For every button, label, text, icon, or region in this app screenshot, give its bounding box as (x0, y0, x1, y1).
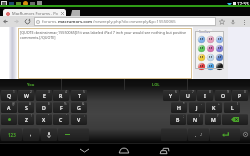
staticText: M (211, 116, 216, 123)
staticText: B (176, 116, 180, 123)
staticText: ; (183, 114, 184, 118)
staticText: [QUOTE=brainsinmac;15550065]If it was la… (20, 30, 187, 40)
staticText: 7 (192, 90, 194, 94)
button[interactable] (216, 36, 223, 43)
button[interactable]: Enter (210, 128, 240, 141)
button[interactable]: Recent apps (152, 143, 176, 156)
button[interactable] (198, 45, 205, 52)
button[interactable]: Y (163, 90, 179, 101)
staticText: $ (48, 102, 50, 106)
button[interactable]: D (36, 102, 52, 113)
button[interactable]: Home (112, 143, 136, 156)
button[interactable] (188, 79, 250, 90)
staticText: Z (25, 116, 28, 123)
button[interactable]: Comma (23, 128, 39, 141)
button[interactable] (198, 63, 205, 70)
button[interactable]: Close tab (60, 11, 64, 15)
button[interactable]: Voice input (41, 128, 57, 141)
button[interactable] (198, 36, 205, 43)
button[interactable]: Backspace (222, 114, 248, 125)
staticText: /newreply.php?do=newreply&p=15550065 (93, 19, 176, 25)
button[interactable]: H (171, 102, 187, 113)
button[interactable]: G (71, 102, 87, 113)
button[interactable] (216, 63, 223, 70)
staticText: T (78, 92, 81, 99)
button[interactable]: U (180, 90, 196, 101)
staticText: - (201, 102, 203, 106)
staticText: X (42, 116, 46, 123)
button[interactable]: [QUOTE=brainsinmac;15550065]If it was la… (18, 28, 192, 79)
button[interactable]: K (206, 102, 222, 113)
staticText: ( (237, 102, 238, 106)
staticText: C (59, 116, 63, 123)
button[interactable]: Shift (1, 114, 17, 125)
button[interactable]: M (205, 114, 221, 125)
button[interactable]: Bookmark (219, 19, 225, 25)
button[interactable] (207, 63, 214, 70)
staticText: F (60, 104, 63, 111)
staticText: ? (217, 114, 219, 118)
button[interactable]: Reload (24, 18, 31, 25)
staticText: Smilies (199, 29, 211, 34)
button[interactable]: Back (2, 18, 9, 25)
button[interactable]: R (53, 90, 69, 101)
staticText: LOL (152, 82, 160, 87)
button[interactable]: X (36, 114, 52, 125)
staticText: @ (12, 102, 15, 106)
button[interactable]: Menu (241, 19, 247, 25)
staticText: / (199, 114, 201, 118)
button[interactable]: E (36, 90, 52, 101)
button[interactable]: Forward (13, 18, 20, 25)
button[interactable] (207, 36, 214, 43)
button[interactable]: Numbers (1, 128, 22, 141)
button[interactable] (207, 54, 214, 61)
staticText: ' (66, 114, 67, 118)
button[interactable]: N (187, 114, 203, 125)
staticText: ! (31, 114, 32, 118)
button[interactable] (216, 45, 223, 52)
staticText: 5 (83, 90, 85, 94)
button[interactable]: J (189, 102, 205, 113)
staticText: E (43, 92, 46, 99)
button[interactable]: S (18, 102, 34, 113)
button[interactable]: P (232, 90, 248, 101)
staticText: 0 (244, 90, 246, 94)
staticText: 1 (13, 90, 15, 94)
staticText: H (177, 104, 181, 111)
button[interactable]: W (18, 90, 34, 101)
staticText: L (231, 104, 234, 111)
button[interactable]: Settings (241, 128, 249, 141)
button[interactable]: O (215, 90, 231, 101)
button[interactable] (198, 54, 205, 61)
button[interactable]: You (0, 79, 61, 90)
staticText: # (29, 102, 32, 106)
staticText: U (186, 92, 190, 99)
button[interactable]: F (53, 102, 69, 113)
button[interactable] (216, 54, 223, 61)
button[interactable]: Hide keyboard (72, 143, 96, 156)
button[interactable]: New tab (68, 10, 80, 17)
button[interactable]: Voice search (230, 19, 236, 25)
button[interactable]: forums. (34, 17, 216, 26)
button[interactable]: V (71, 114, 87, 125)
button[interactable]: MacRumors Forums - Po (3, 9, 66, 17)
button[interactable]: L (224, 102, 240, 113)
button[interactable]: T (71, 90, 87, 101)
button[interactable] (207, 45, 214, 52)
button[interactable]: Period (188, 128, 209, 141)
button[interactable]: A (1, 102, 17, 113)
staticText: " (48, 114, 50, 118)
staticText: macrumors.com (58, 19, 93, 25)
button[interactable] (62, 79, 124, 90)
button[interactable]: I (197, 90, 213, 101)
staticText: J (196, 104, 198, 111)
button[interactable]: B (170, 114, 186, 125)
button[interactable]: C (53, 114, 69, 125)
button[interactable]: Z (18, 114, 34, 125)
button[interactable]: Q (1, 90, 17, 101)
button[interactable]: Space (58, 128, 89, 141)
button[interactable]: LOL (125, 79, 187, 90)
button[interactable]: Space (161, 128, 187, 141)
staticText: O (221, 92, 226, 99)
staticText: 123 (8, 132, 16, 138)
